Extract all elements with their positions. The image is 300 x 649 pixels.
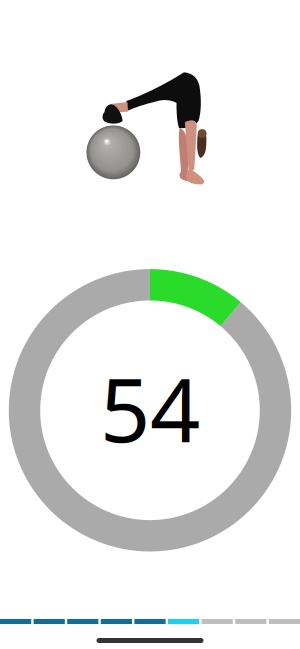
button[interactable]: 54 seconds remaining, pause (0, 269, 300, 551)
staticText: 54 (100, 350, 200, 466)
button[interactable]: Exercise demonstration (0, 0, 300, 200)
